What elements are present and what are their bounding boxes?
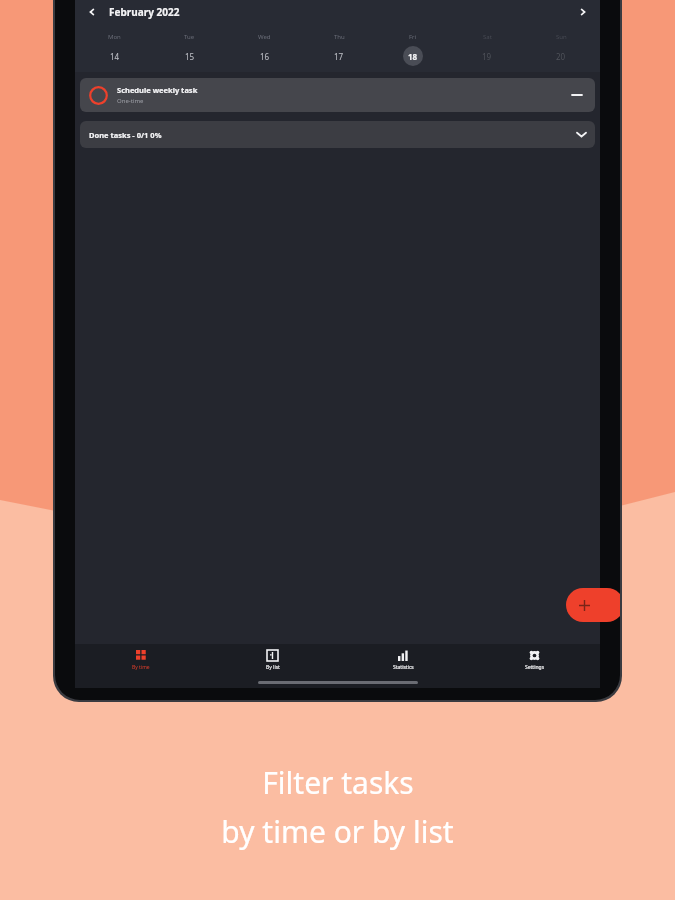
staticText: By list — [266, 664, 280, 671]
staticText: Wed — [258, 33, 271, 41]
staticText: February 2022 — [109, 5, 180, 19]
staticText: Statistics — [393, 664, 414, 671]
button[interactable]: Wed — [227, 26, 302, 72]
button[interactable]: Statistics — [338, 649, 469, 688]
staticText: Fri — [409, 33, 417, 41]
staticText: Thu — [334, 33, 345, 41]
button[interactable]: Schedule weekly task — [80, 78, 595, 112]
staticText: Mon — [108, 33, 121, 41]
staticText: Done tasks - 0/1 0% — [89, 130, 162, 140]
staticText: by time or by list — [221, 811, 454, 852]
staticText: 20 — [556, 51, 566, 62]
button[interactable]: Tue — [152, 26, 227, 72]
button[interactable]: Fri — [376, 26, 450, 72]
button[interactable]: Done tasks - 0/1 0% — [80, 121, 595, 148]
button[interactable]: Thu — [302, 26, 376, 72]
staticText: 18 — [408, 51, 418, 62]
button[interactable]: Collapse task — [568, 86, 586, 104]
staticText: 14 — [110, 51, 120, 62]
staticText: By time — [132, 664, 150, 671]
staticText: Schedule weekly task — [117, 85, 198, 95]
staticText: Settings — [525, 664, 545, 671]
staticText: 19 — [482, 51, 492, 62]
staticText: Tue — [184, 33, 195, 41]
staticText: Filter tasks — [262, 762, 414, 803]
button[interactable]: Settings — [469, 649, 600, 688]
button[interactable]: Next month — [572, 1, 594, 23]
staticText: One-time — [117, 97, 144, 105]
button[interactable]: Previous month — [81, 1, 103, 23]
button[interactable]: Add task — [566, 588, 620, 622]
button[interactable]: By time — [75, 649, 207, 688]
button[interactable]: Mon — [77, 26, 152, 72]
staticText: 15 — [185, 51, 195, 62]
staticText: Sun — [556, 33, 567, 41]
staticText: 17 — [334, 51, 344, 62]
staticText: Sat — [483, 33, 492, 41]
button[interactable]: By list — [207, 649, 338, 688]
staticText: 16 — [260, 51, 270, 62]
